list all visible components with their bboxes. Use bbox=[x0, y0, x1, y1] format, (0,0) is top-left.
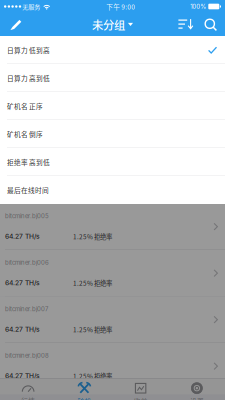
button[interactable]: Search bbox=[198, 13, 223, 36]
staticText: bitcminer.bj006 bbox=[5, 259, 49, 266]
staticText: 拒绝率 高到低 bbox=[7, 157, 50, 167]
staticText: 矿机名 倒序 bbox=[7, 129, 43, 139]
staticText: bitcminer.bj005 bbox=[5, 212, 49, 220]
staticText: 行情 bbox=[21, 396, 35, 400]
button[interactable]: Edit bbox=[2, 13, 30, 36]
button[interactable]: 矿机名 正序 bbox=[0, 92, 225, 120]
button[interactable]: bitcminer.bj004 bbox=[0, 157, 225, 203]
staticText: bitcminer.bj008 bbox=[5, 352, 49, 359]
staticText: 无服务 bbox=[21, 2, 40, 11]
button[interactable]: 未分组 bbox=[92, 13, 133, 36]
staticText: bitcminer.bj002 bbox=[5, 73, 49, 80]
staticText: 64.27 TH/s bbox=[5, 279, 40, 287]
button[interactable]: 日算力 低到高 bbox=[0, 36, 225, 64]
staticText: 最后在线时间 bbox=[7, 185, 49, 195]
staticText: 未分组 bbox=[92, 16, 125, 33]
staticText: 64.27 TH/s bbox=[5, 186, 40, 194]
staticText: 1.25% 拒绝率 bbox=[73, 55, 112, 64]
staticText: 1.25% 拒绝率 bbox=[73, 325, 112, 334]
button[interactable]: 矿机名 倒序 bbox=[0, 120, 225, 148]
button[interactable]: bitcminer.bj001 bbox=[0, 27, 225, 73]
staticText: 64.27 TH/s bbox=[5, 56, 40, 64]
button[interactable]: Sort bbox=[173, 13, 198, 36]
button[interactable]: 收益 bbox=[112, 378, 169, 400]
staticText: 矿机名 正序 bbox=[7, 101, 43, 111]
staticText: 1.25% 拒绝率 bbox=[73, 278, 112, 287]
staticText: 下午 9:00 bbox=[106, 2, 135, 11]
button[interactable]: bitcminer.bj007 bbox=[0, 296, 225, 343]
staticText: 64.27 TH/s bbox=[5, 232, 40, 240]
button[interactable]: 拒绝率 高到低 bbox=[0, 148, 225, 176]
button[interactable]: bitcminer.bj002 bbox=[0, 64, 225, 110]
button[interactable]: 行情 bbox=[0, 379, 56, 400]
staticText: 设置 bbox=[190, 396, 204, 400]
staticText: 1.25% 拒绝率 bbox=[73, 371, 112, 380]
staticText: 1.25% 拒绝率 bbox=[73, 139, 112, 148]
staticText: 64.27 TH/s bbox=[5, 325, 40, 333]
staticText: 日算力 低到高 bbox=[7, 45, 50, 55]
button[interactable]: 最后在线时间 bbox=[0, 176, 225, 204]
button[interactable]: bitcminer.bj006 bbox=[0, 250, 225, 296]
button[interactable]: bitcminer.bj005 bbox=[0, 203, 225, 250]
staticText: bitcminer.bj007 bbox=[5, 305, 48, 313]
staticText: 矿机 bbox=[77, 396, 91, 400]
button[interactable]: bitcminer.bj003 bbox=[0, 110, 225, 157]
button[interactable]: 矿机 bbox=[56, 378, 112, 400]
button[interactable]: 日算力 高到低 bbox=[0, 64, 225, 92]
staticText: 收益 bbox=[134, 396, 148, 400]
staticText: 64.27 TH/s bbox=[5, 372, 40, 380]
staticText: 100% bbox=[190, 3, 206, 10]
staticText: 日算力 高到低 bbox=[7, 73, 50, 83]
staticText: 1.25% 拒绝率 bbox=[73, 232, 112, 241]
button[interactable]: 设置 bbox=[169, 378, 225, 400]
button[interactable]: bitcminer.bj008 bbox=[0, 343, 225, 389]
